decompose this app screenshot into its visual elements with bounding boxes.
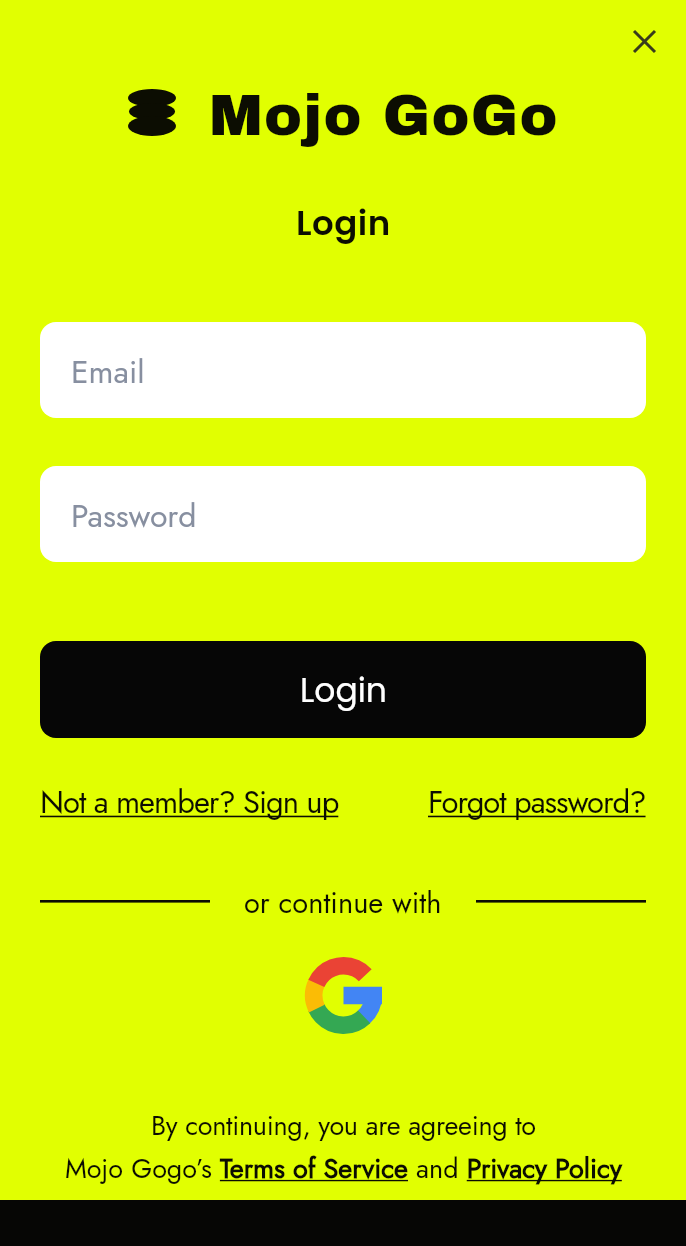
staticText: Mojo Gogo’s Terms of Service and Privacy…: [65, 1149, 622, 1188]
staticText: Login: [300, 667, 387, 713]
staticText: Email: [71, 349, 145, 395]
button[interactable]: Password: [40, 466, 646, 562]
staticText: or continue with: [244, 882, 442, 924]
button[interactable]: Login: [40, 641, 646, 738]
button[interactable]: Not a member? Sign up: [40, 780, 339, 825]
staticText: Login: [296, 199, 391, 247]
staticText: By continuing, you are agreeing to: [151, 1106, 536, 1145]
button[interactable]: [305, 957, 382, 1034]
button[interactable]: Email: [40, 322, 646, 418]
staticText: Mojo GoGo: [209, 85, 559, 147]
button[interactable]: [624, 21, 664, 61]
staticText: Password: [71, 493, 197, 539]
button[interactable]: Forgot password?: [428, 780, 646, 825]
